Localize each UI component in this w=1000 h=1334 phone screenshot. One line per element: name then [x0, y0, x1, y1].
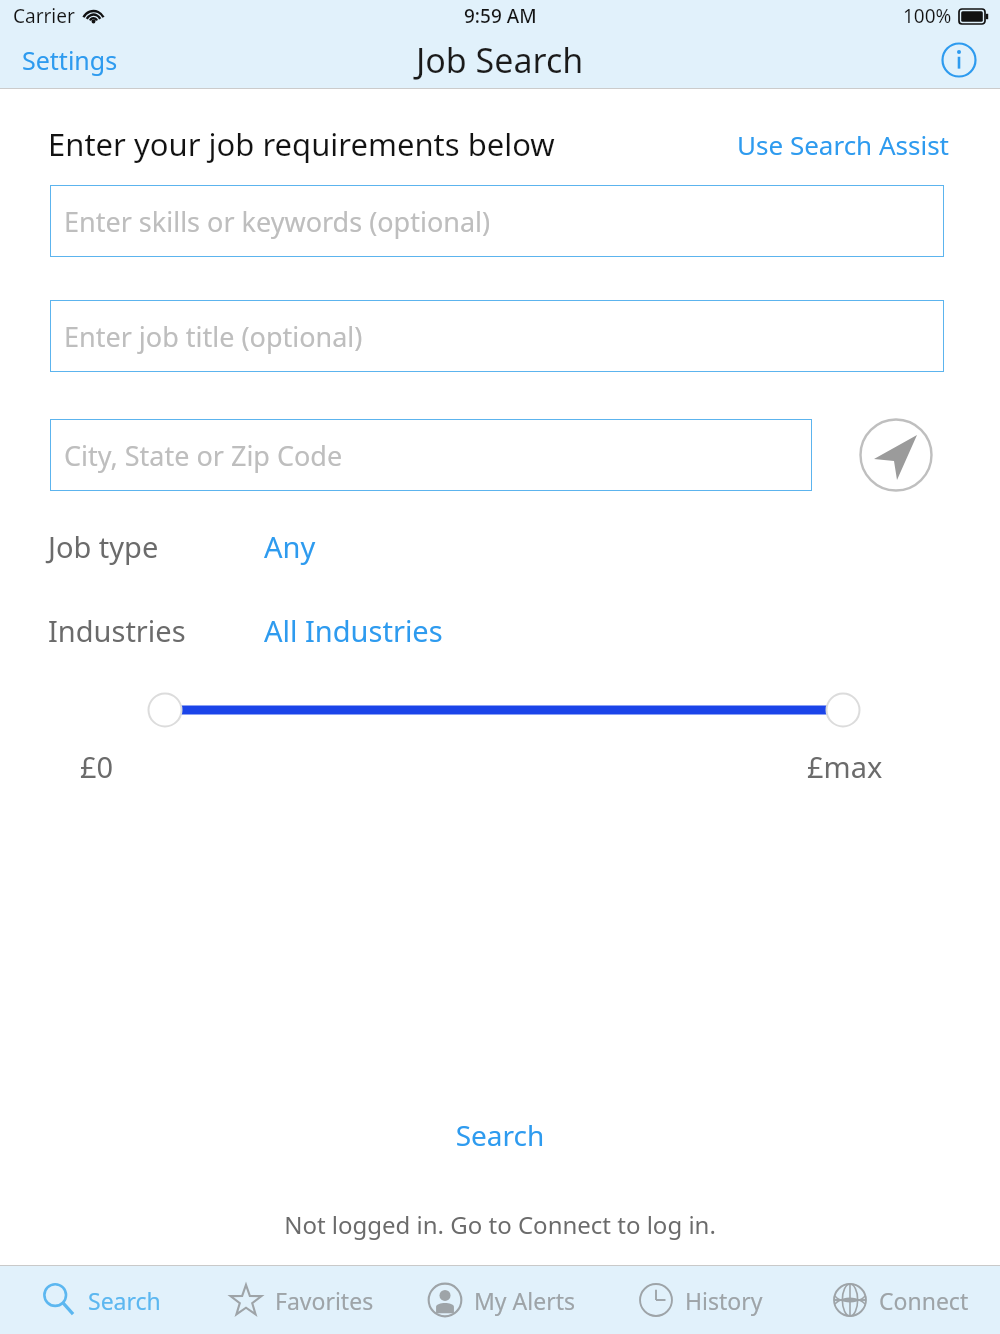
- staticText: Search: [88, 1285, 161, 1316]
- button[interactable]: My Alerts: [400, 1266, 600, 1334]
- button[interactable]: Info: [936, 37, 982, 83]
- staticText: £max: [807, 747, 883, 786]
- button[interactable]: Search: [0, 1266, 200, 1334]
- button[interactable]: Settings: [0, 33, 140, 87]
- staticText: 100%: [903, 3, 952, 29]
- button[interactable]: City, State or Zip Code: [50, 419, 812, 491]
- button[interactable]: Connect: [800, 1266, 1000, 1334]
- staticText: Carrier: [13, 3, 75, 29]
- button[interactable]: All Industries: [264, 607, 443, 653]
- button[interactable]: History: [600, 1266, 800, 1334]
- staticText: Industries: [48, 611, 186, 650]
- staticText: Favorites: [275, 1285, 374, 1316]
- staticText: 9:59 AM: [464, 3, 537, 29]
- staticText: Job Search: [416, 37, 584, 83]
- button[interactable]: Enter skills or keywords (optional): [50, 185, 944, 257]
- staticText: Connect: [879, 1285, 969, 1316]
- staticText: History: [685, 1285, 763, 1316]
- staticText: Enter your job requirements below: [48, 123, 555, 165]
- button[interactable]: Any: [264, 523, 316, 569]
- button[interactable]: Favorites: [200, 1266, 400, 1334]
- button[interactable]: Search: [0, 1110, 1000, 1160]
- staticText: City, State or Zip Code: [64, 437, 343, 474]
- button[interactable]: Use current location: [856, 415, 936, 495]
- staticText: Job type: [48, 527, 159, 566]
- staticText: Enter skills or keywords (optional): [64, 203, 491, 240]
- staticText: My Alerts: [474, 1285, 575, 1316]
- button[interactable]: Enter job title (optional): [50, 300, 944, 372]
- staticText: Not logged in. Go to Connect to log in.: [0, 1208, 1000, 1241]
- staticText: Enter job title (optional): [64, 318, 363, 355]
- staticText: £0: [80, 747, 114, 786]
- button[interactable]: Use Search Assist: [737, 127, 1000, 162]
